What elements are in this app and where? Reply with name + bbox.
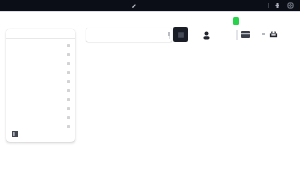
button[interactable] bbox=[6, 106, 70, 110]
button[interactable] bbox=[6, 88, 70, 92]
button[interactable] bbox=[6, 79, 70, 83]
button[interactable] bbox=[6, 43, 70, 47]
button[interactable]: Call us bbox=[129, 1, 139, 11]
button[interactable]: Cart bbox=[268, 29, 279, 40]
button[interactable] bbox=[6, 97, 70, 101]
button[interactable]: Account bbox=[200, 29, 213, 42]
button[interactable]: Wallet bbox=[241, 31, 250, 38]
button[interactable]: Facebook bbox=[274, 2, 281, 9]
button[interactable] bbox=[86, 28, 172, 42]
button[interactable]: Instagram bbox=[287, 2, 294, 9]
button[interactable] bbox=[6, 124, 70, 128]
button[interactable] bbox=[6, 52, 70, 56]
button[interactable]: Brand bbox=[12, 131, 18, 137]
button[interactable] bbox=[6, 115, 70, 119]
button[interactable] bbox=[6, 61, 70, 65]
button[interactable]: Search bbox=[173, 27, 188, 42]
button[interactable]: Brand bbox=[6, 29, 75, 142]
button[interactable] bbox=[6, 70, 70, 74]
